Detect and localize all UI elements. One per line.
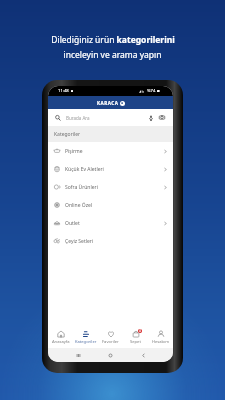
staticText: Çeyiz Setleri: [65, 238, 94, 245]
button[interactable]: Online Özel: [48, 196, 173, 214]
staticText: Hesabım: [152, 339, 170, 345]
button[interactable]: Favoriler: [98, 327, 123, 348]
button[interactable]: Outlet: [48, 214, 173, 232]
staticText: 11:48: [58, 88, 69, 94]
other: Recents: [76, 353, 81, 358]
button[interactable]: Pişirme: [48, 142, 173, 160]
staticText: Sepet: [130, 339, 141, 345]
button[interactable]: Çeyiz Setleri: [48, 232, 173, 250]
staticText: Dilediğiniz ürün kategorilerini: [51, 34, 175, 46]
other: Camera search: [159, 115, 165, 120]
staticText: %74: [147, 88, 156, 94]
other: Home: [108, 353, 113, 358]
staticText: Outlet: [65, 220, 80, 227]
staticText: Anasayfa: [52, 339, 70, 345]
other: Logo: [120, 101, 125, 106]
staticText: Kategoriler: [54, 131, 81, 138]
button[interactable]: Anasayfa: [48, 327, 73, 348]
button[interactable]: Küçük Ev Aletleri: [48, 160, 173, 178]
staticText: Pişirme: [65, 148, 83, 155]
button[interactable]: 4: [123, 327, 148, 348]
staticText: inceleyin ve arama yapın: [63, 49, 162, 61]
staticText: Favoriler: [102, 339, 119, 345]
staticText: Sofra Ürünleri: [65, 184, 98, 191]
staticText: Küçük Ev Aletleri: [65, 166, 104, 173]
other: Back: [141, 353, 146, 358]
button[interactable]: Kategoriler: [73, 327, 98, 348]
staticText: Online Özel: [65, 202, 93, 209]
other: Search: [55, 115, 61, 121]
button[interactable]: Hesabım: [148, 327, 173, 348]
staticText: KARACA: [97, 100, 119, 106]
button[interactable]: Sofra Ürünleri: [48, 178, 173, 196]
staticText: 4: [139, 329, 141, 333]
other: Voice search: [149, 115, 153, 121]
staticText: Burada Ara: [66, 115, 90, 121]
staticText: Kategoriler: [75, 339, 97, 345]
